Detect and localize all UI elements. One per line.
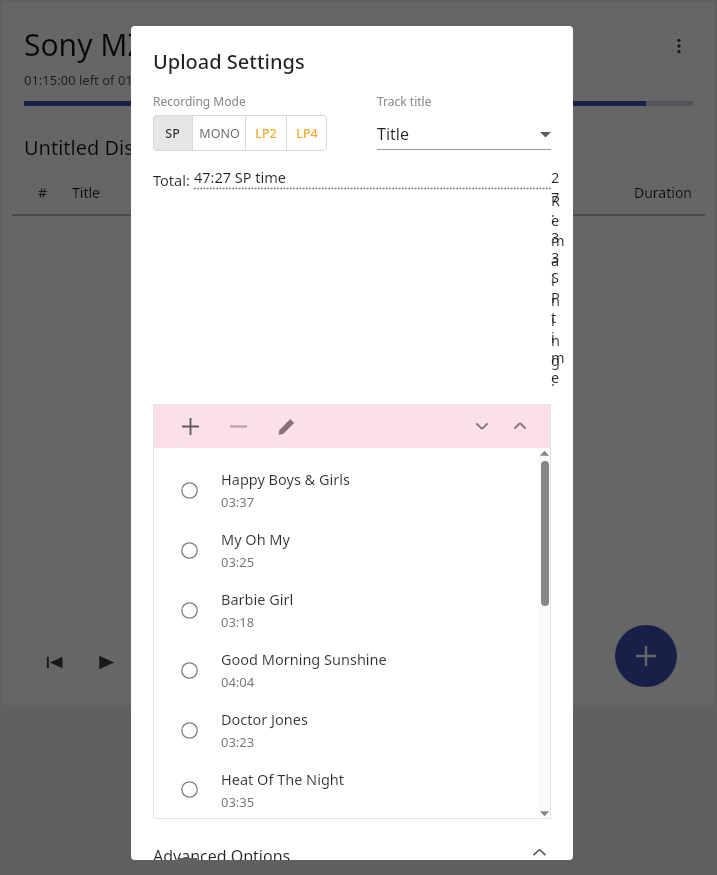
staticText: Untitled Disc xyxy=(24,134,144,161)
staticText: Sony MZ-RH1 xyxy=(24,24,213,65)
staticText: MONO xyxy=(199,125,240,142)
button[interactable]: Doctor Jones xyxy=(153,700,551,760)
staticText: Barbie Girl xyxy=(221,589,294,609)
button[interactable]: Title xyxy=(377,119,551,149)
staticText: Total: xyxy=(153,170,194,190)
button[interactable]: Happy Boys & Girls xyxy=(153,460,551,520)
staticText: Track title xyxy=(377,93,432,109)
button[interactable]: Heat Of The Night xyxy=(153,760,551,819)
staticText: 03:35 xyxy=(221,793,255,811)
staticText: 03:23 xyxy=(221,733,255,751)
button[interactable]: Previous xyxy=(32,640,76,684)
button[interactable]: LP4 xyxy=(287,115,327,151)
staticText: LP2 xyxy=(255,125,277,142)
staticText: My Oh My xyxy=(221,529,290,549)
button[interactable]: Remove track xyxy=(221,409,255,443)
staticText: LP4 xyxy=(296,125,318,142)
button[interactable]: Advanced Options xyxy=(131,845,573,860)
staticText: Doctor Jones xyxy=(221,709,308,729)
staticText: 04:04 xyxy=(221,673,255,691)
staticText: Good Morning Sunshine xyxy=(221,649,387,669)
staticText: # xyxy=(38,183,48,202)
staticText: Recording Mode xyxy=(153,93,246,109)
button[interactable]: SP xyxy=(153,115,192,151)
staticText: 03:25 xyxy=(221,553,255,571)
button[interactable]: Good Morning Sunshine xyxy=(153,640,551,700)
staticText: Heat Of The Night xyxy=(221,769,344,789)
staticText: Title xyxy=(72,183,100,202)
staticText: 47:27 SP time xyxy=(194,167,287,187)
staticText: Advanced Options xyxy=(153,845,291,860)
button[interactable]: LP2 xyxy=(246,115,286,151)
button[interactable]: Add xyxy=(615,625,677,687)
staticText: SP xyxy=(165,125,180,142)
button[interactable]: Move down xyxy=(465,409,499,443)
button[interactable]: MONO xyxy=(193,115,245,151)
staticText: Title xyxy=(377,123,409,145)
staticText: Upload Settings xyxy=(153,48,305,75)
staticText: 03:37 xyxy=(221,493,255,511)
button[interactable]: Barbie Girl xyxy=(153,580,551,640)
button[interactable]: My Oh My xyxy=(153,520,551,580)
staticText: Happy Boys & Girls xyxy=(221,469,350,489)
staticText: 03:18 xyxy=(221,613,255,631)
button[interactable]: Add track xyxy=(173,409,207,443)
button[interactable]: Edit track xyxy=(269,409,303,443)
staticText: 01:15:00 left of 01:20:00 xyxy=(24,71,170,89)
button[interactable]: Move up xyxy=(503,409,537,443)
button[interactable]: Play xyxy=(84,640,128,684)
staticText: Duration xyxy=(634,183,693,202)
button[interactable]: More options xyxy=(657,24,701,68)
